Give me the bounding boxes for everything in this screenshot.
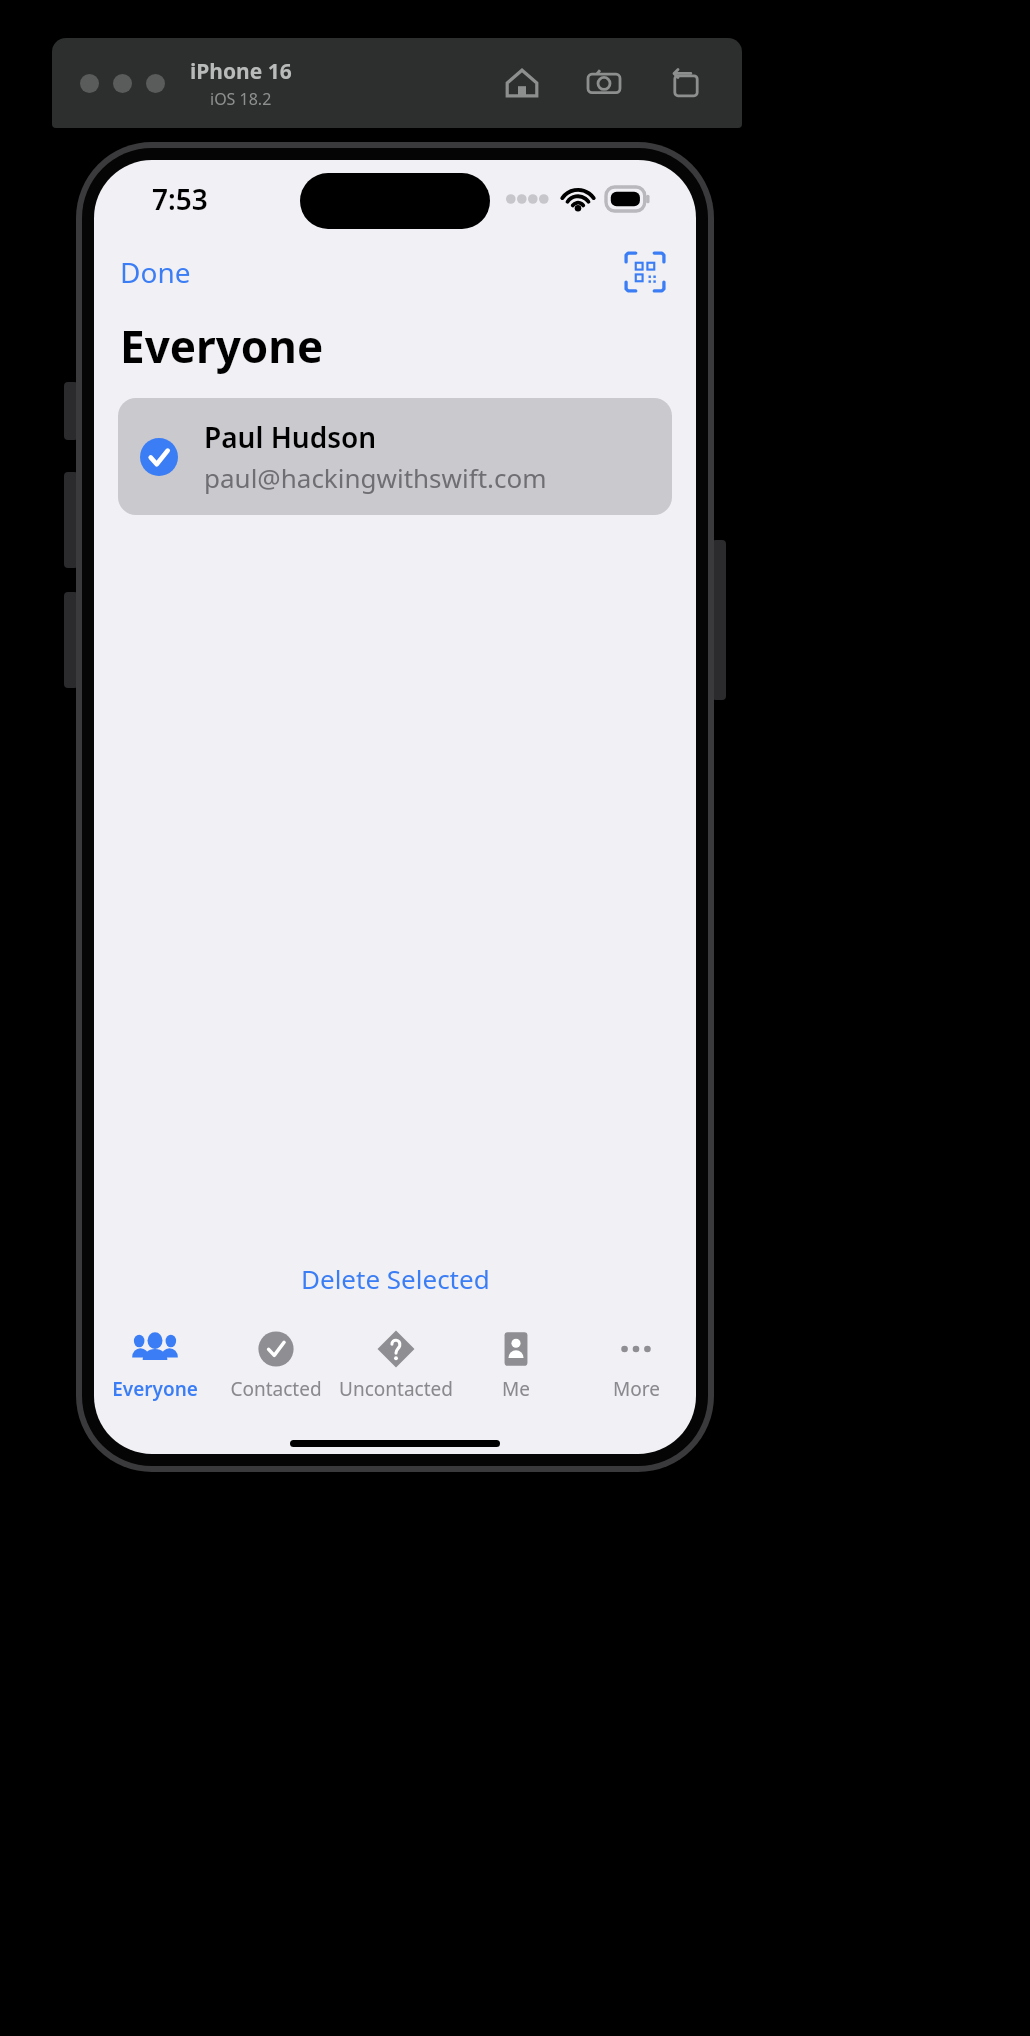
button[interactable]: Window control: [113, 74, 132, 93]
button[interactable]: Window control: [80, 74, 99, 93]
staticText: More: [613, 1376, 660, 1402]
button[interactable]: Window control: [146, 74, 165, 93]
staticText: 7:53: [152, 180, 208, 218]
button[interactable]: More: [576, 1322, 696, 1418]
staticText: iOS 18.2: [210, 88, 272, 110]
button[interactable]: Everyone: [94, 1322, 215, 1418]
staticText: Uncontacted: [339, 1376, 453, 1402]
button[interactable]: Done: [108, 245, 203, 299]
button[interactable]: Contacted: [215, 1322, 336, 1418]
staticText: Delete Selected: [301, 1261, 490, 1296]
staticText: Paul Hudson: [204, 418, 377, 456]
staticText: iPhone 16: [190, 57, 292, 86]
button[interactable]: Me: [456, 1322, 576, 1418]
staticText: Me: [502, 1376, 530, 1402]
staticText: Everyone: [112, 1376, 198, 1402]
button[interactable]: Delete Selected: [94, 1251, 696, 1306]
staticText: Everyone: [120, 316, 324, 376]
staticText: Done: [120, 253, 191, 291]
button[interactable]: Uncontacted: [336, 1322, 456, 1418]
staticText: Contacted: [230, 1376, 322, 1402]
staticText: paul@hackingwithswift.com: [204, 460, 547, 495]
button[interactable]: Screenshot: [584, 63, 624, 103]
button[interactable]: Scan QR code: [618, 245, 672, 299]
button[interactable]: Rotate: [666, 63, 706, 103]
button[interactable]: Paul Hudson: [118, 398, 672, 515]
button[interactable]: Home: [502, 63, 542, 103]
